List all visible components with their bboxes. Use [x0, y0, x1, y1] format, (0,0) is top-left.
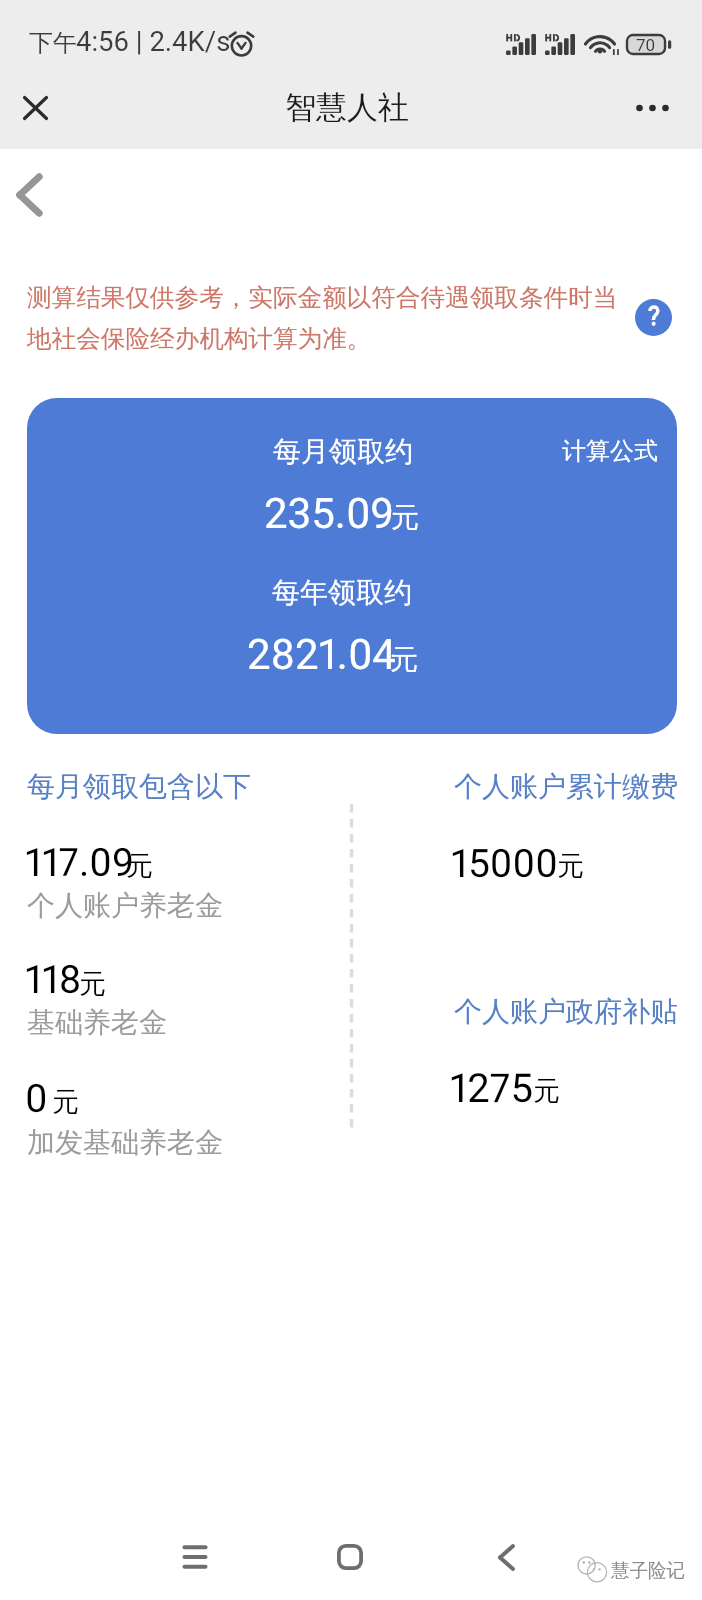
button[interactable]: Help — [635, 299, 672, 336]
staticText: ? — [648, 302, 660, 331]
staticText: 4:56 | 2.4K/s — [76, 25, 231, 57]
button[interactable]: 计算公式 — [27, 398, 677, 734]
staticText: 智慧人社 — [0, 88, 698, 127]
staticText: 117.09 — [25, 840, 135, 886]
staticText: 70 — [636, 35, 656, 55]
staticText: 15000 — [451, 841, 558, 887]
button[interactable]: Close — [0, 68, 70, 147]
staticText: 元 — [390, 642, 418, 677]
staticText: 元 — [533, 1074, 560, 1108]
staticText: 118 — [25, 957, 82, 1003]
staticText: 1275 — [450, 1065, 533, 1112]
staticText: 元 — [52, 1085, 79, 1119]
button[interactable]: 计算公式 — [562, 436, 658, 466]
staticText: 个人账户政府补贴 — [454, 994, 678, 1029]
staticText: 个人账户累计缴费 — [454, 769, 678, 804]
button[interactable]: Back — [431, 1507, 581, 1600]
staticText: 每年领取约 — [272, 575, 412, 610]
staticText: 元 — [391, 500, 419, 535]
staticText: 个人账户养老金 — [27, 888, 223, 923]
staticText: 0 — [25, 1076, 48, 1122]
staticText: 测算结果仅供参考，实际金额以符合待遇领取条件时当地社会保险经办机构计算为准。 — [27, 282, 627, 355]
staticText: 基础养老金 — [27, 1005, 167, 1040]
staticText: 235.09 — [264, 489, 395, 538]
button[interactable]: Home — [275, 1507, 425, 1600]
staticText: 元 — [557, 849, 584, 883]
button[interactable]: Recent apps — [120, 1507, 270, 1600]
staticText: 慧子险记 — [611, 1559, 685, 1582]
staticText: 每月领取包含以下 — [27, 769, 251, 804]
staticText: 每月领取约 — [273, 434, 413, 469]
button[interactable]: More options — [600, 70, 702, 149]
staticText: 元 — [126, 849, 153, 883]
staticText: 2821.04 — [247, 630, 396, 679]
staticText: 下午 — [29, 28, 77, 58]
staticText: 加发基础养老金 — [27, 1125, 223, 1160]
button[interactable]: Back — [0, 160, 56, 230]
staticText: 元 — [79, 967, 106, 1001]
